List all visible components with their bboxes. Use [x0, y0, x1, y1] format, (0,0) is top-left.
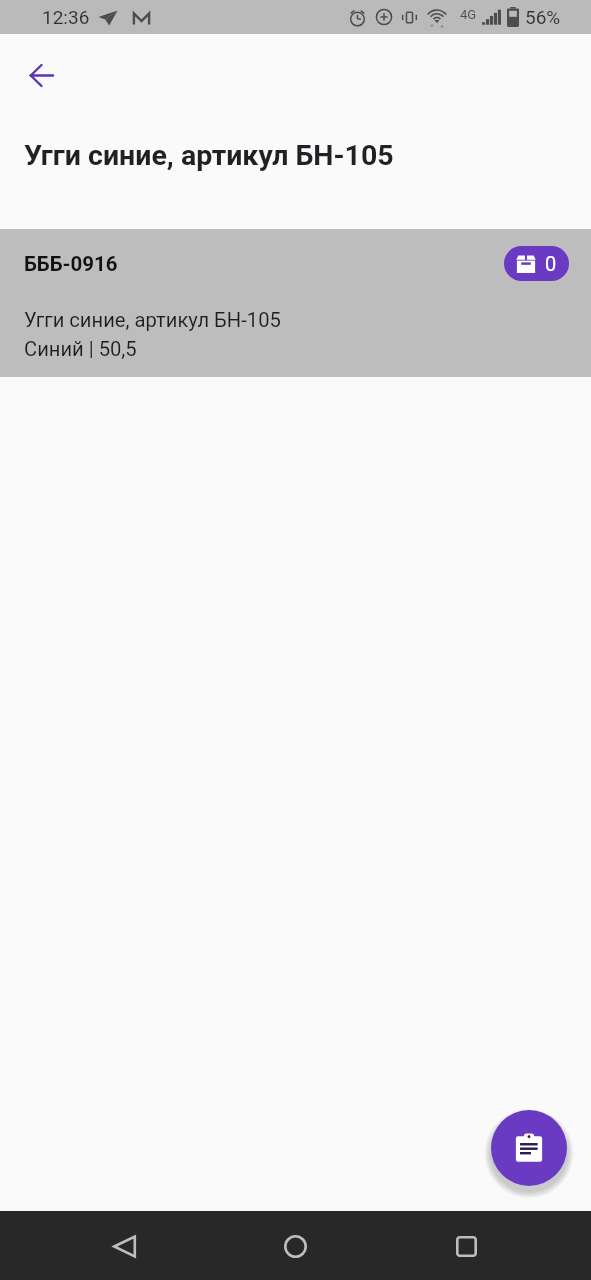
staticText: Синий | 50,5	[24, 337, 137, 361]
button[interactable]: Recents	[439, 1219, 493, 1273]
staticText: Угги синие, артикул БН-105	[24, 139, 394, 172]
staticText: 4G	[460, 7, 477, 22]
button[interactable]: Back	[13, 47, 69, 103]
staticText: 0	[545, 252, 557, 275]
button[interactable]: Home	[268, 1219, 322, 1273]
button[interactable]: Back	[97, 1219, 151, 1273]
staticText: 56%	[525, 6, 561, 28]
button[interactable]: БББ-0916	[0, 229, 591, 377]
button[interactable]: Inventory count: 0	[504, 246, 569, 281]
staticText: БББ-0916	[24, 252, 118, 276]
staticText: Угги синие, артикул БН-105	[24, 308, 281, 332]
staticText: 12:36	[42, 6, 90, 28]
button[interactable]: Create task	[491, 1110, 567, 1186]
